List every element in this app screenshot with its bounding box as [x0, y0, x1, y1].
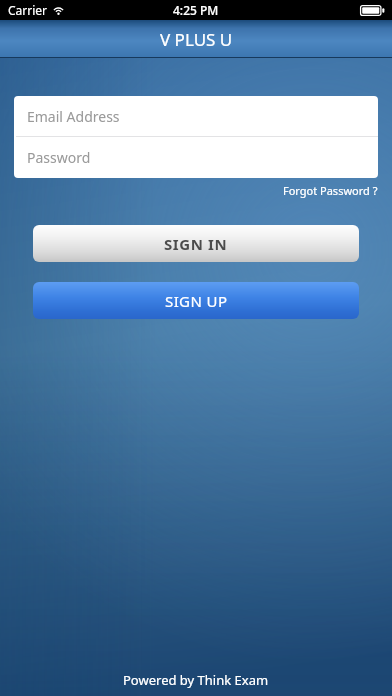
staticText: Forgot Password ?	[283, 183, 378, 198]
button[interactable]: SIGN UP	[33, 282, 359, 319]
staticText: 4:25 PM	[173, 2, 219, 18]
staticText: Password	[27, 148, 91, 167]
staticText: Powered by Think Exam	[123, 671, 269, 689]
button[interactable]: Email Address	[14, 96, 378, 136]
staticText: SIGN UP	[165, 291, 228, 311]
button[interactable]: Forgot Password ?	[281, 181, 380, 200]
staticText: V PLUS U	[160, 28, 233, 51]
staticText: Carrier	[8, 2, 48, 18]
button[interactable]: SIGN IN	[33, 225, 359, 262]
staticText: Email Address	[27, 107, 120, 126]
staticText: SIGN IN	[164, 234, 228, 254]
button[interactable]: Password	[14, 137, 378, 178]
